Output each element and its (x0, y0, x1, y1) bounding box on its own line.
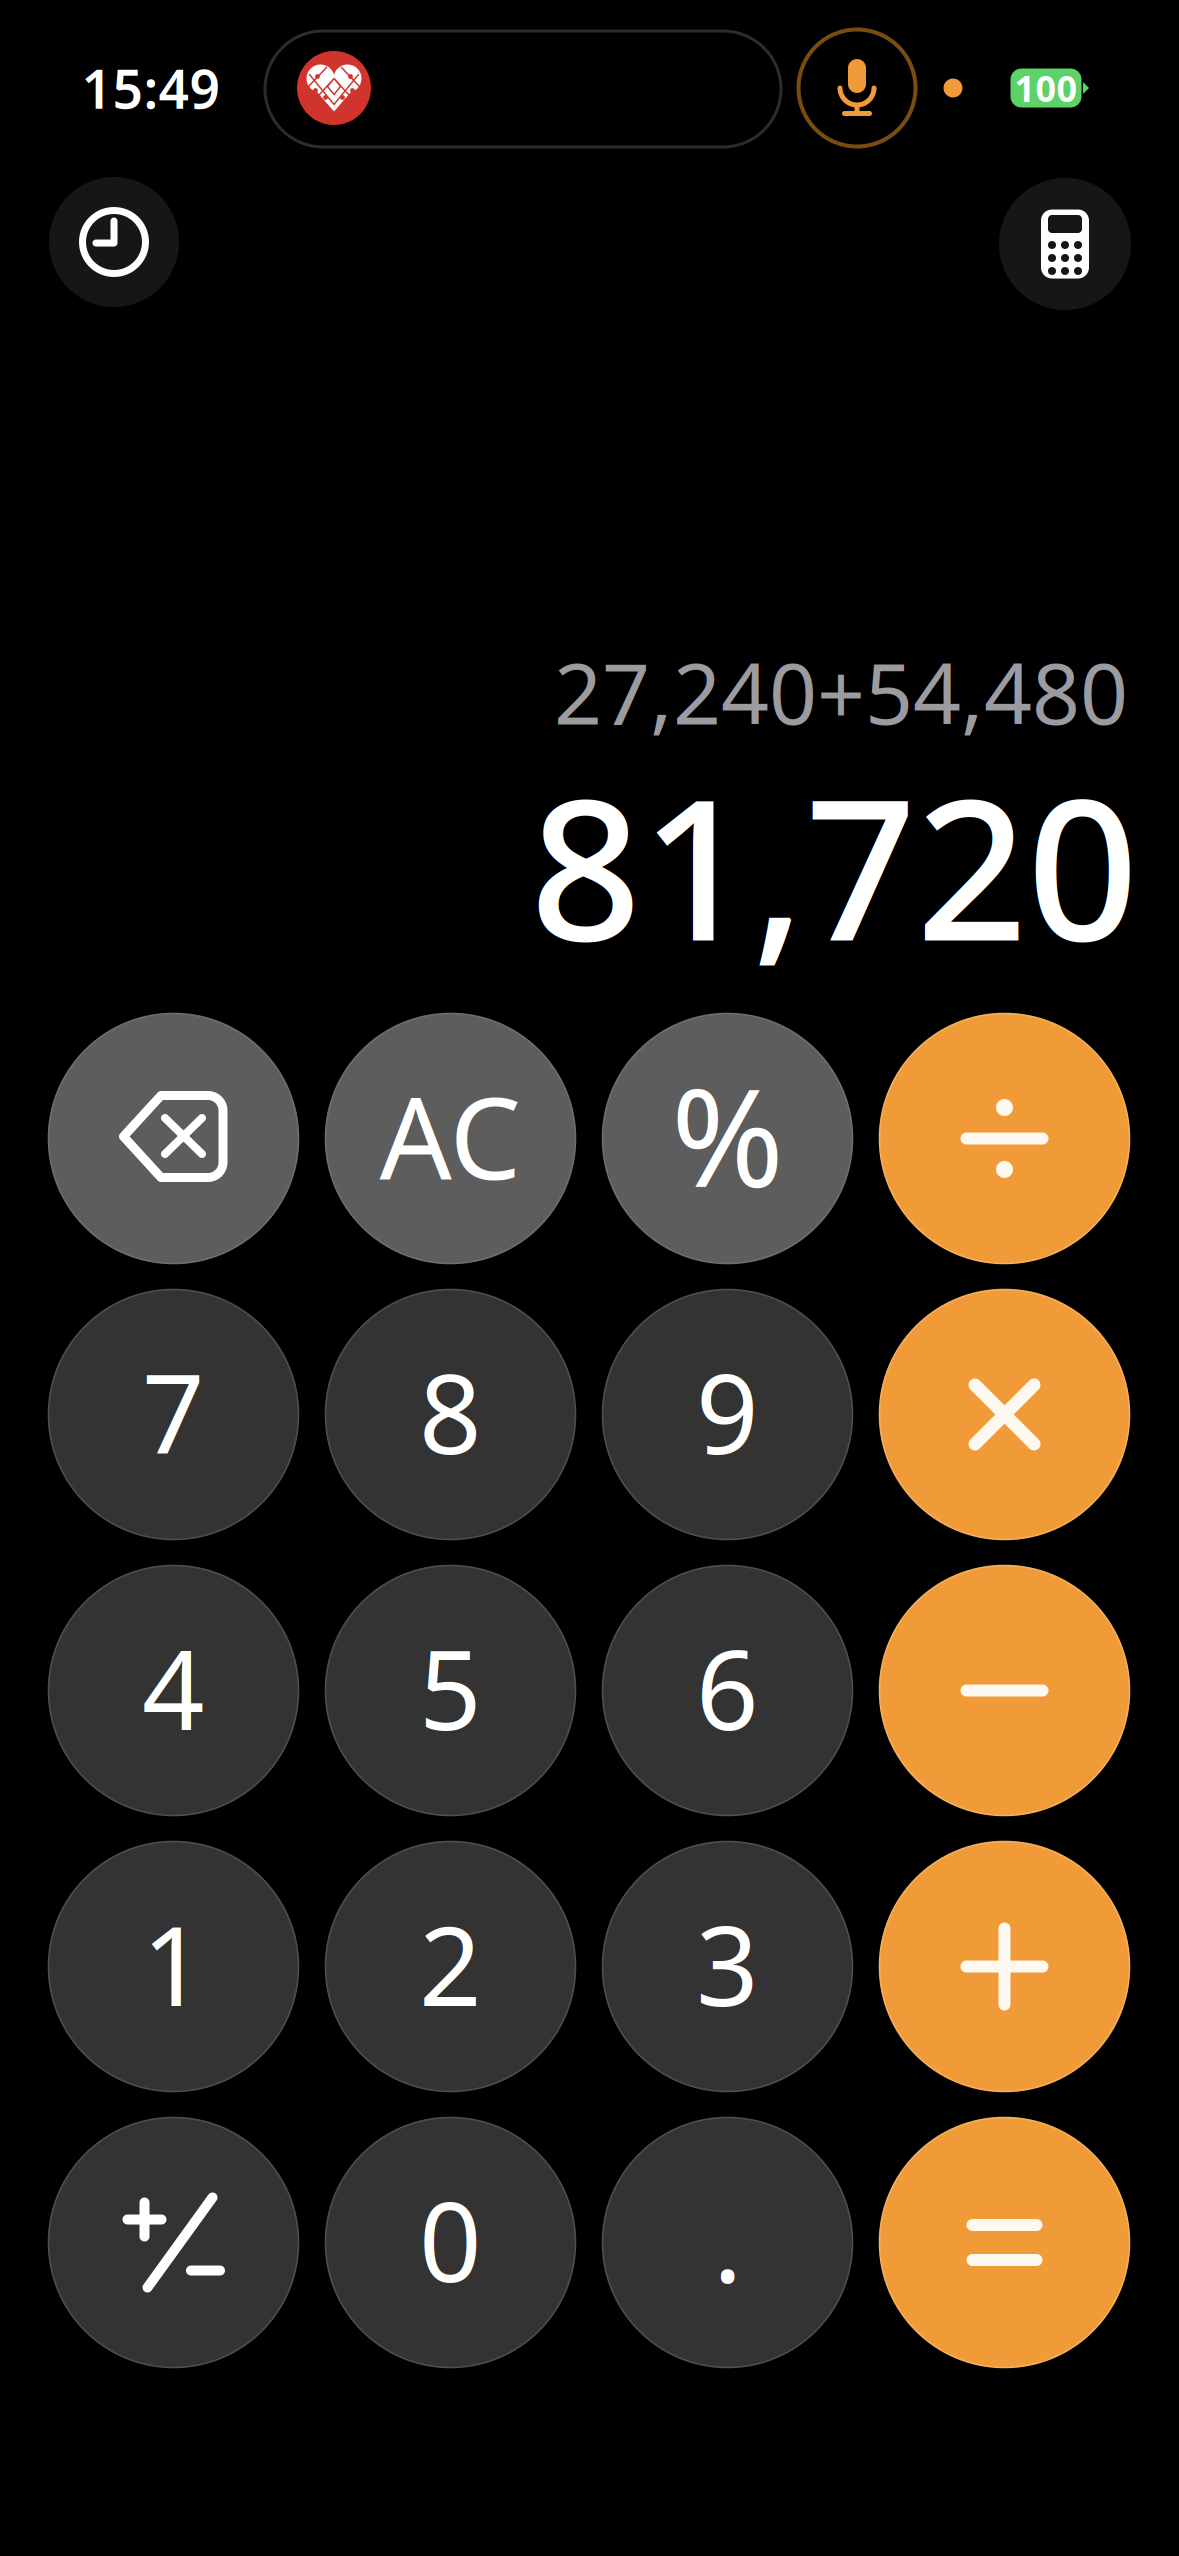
button[interactable]: 8 (325, 1289, 575, 1539)
staticText: 0 (419, 2167, 482, 2312)
button[interactable]: Delete (48, 1013, 298, 1263)
button[interactable]: AC (325, 1013, 575, 1263)
button[interactable]: 1 (48, 1841, 298, 2091)
button[interactable]: Toggle sign (48, 2117, 298, 2367)
button[interactable]: 4 (48, 1565, 298, 1815)
button[interactable]: History (49, 177, 179, 307)
button[interactable]: 7 (48, 1289, 298, 1539)
button[interactable]: 5 (325, 1565, 575, 1815)
staticText: % (671, 1044, 784, 1225)
button[interactable]: 2 (325, 1841, 575, 2091)
staticText: 15:49 (81, 53, 220, 123)
button[interactable]: % (602, 1013, 852, 1263)
staticText: 81,720 (530, 736, 1138, 994)
staticText: . (713, 2167, 742, 2312)
staticText: AC (379, 1060, 521, 1211)
staticText: 7 (142, 1339, 205, 1484)
staticText: 2 (419, 1891, 482, 2036)
button[interactable]: 0 (325, 2117, 575, 2367)
staticText: 27,240+54,480 (554, 636, 1128, 748)
button[interactable]: 9 (602, 1289, 852, 1539)
button[interactable]: 6 (602, 1565, 852, 1815)
button[interactable]: Subtract (879, 1565, 1129, 1815)
staticText: 5 (419, 1615, 482, 1760)
staticText: 9 (696, 1339, 759, 1484)
button[interactable]: Divide (879, 1013, 1129, 1263)
staticText: 6 (696, 1615, 759, 1760)
button[interactable]: 3 (602, 1841, 852, 2091)
staticText: 8 (419, 1339, 482, 1484)
staticText: 3 (696, 1891, 759, 2036)
button[interactable]: Equals (879, 2117, 1129, 2367)
button[interactable]: Add (879, 1841, 1129, 2091)
staticText: 1 (142, 1891, 205, 2036)
staticText: 100 (1014, 64, 1077, 112)
button[interactable]: Calculator mode (999, 178, 1131, 310)
staticText: 4 (142, 1615, 205, 1760)
button[interactable]: . (602, 2117, 852, 2367)
button[interactable]: Multiply (879, 1289, 1129, 1539)
